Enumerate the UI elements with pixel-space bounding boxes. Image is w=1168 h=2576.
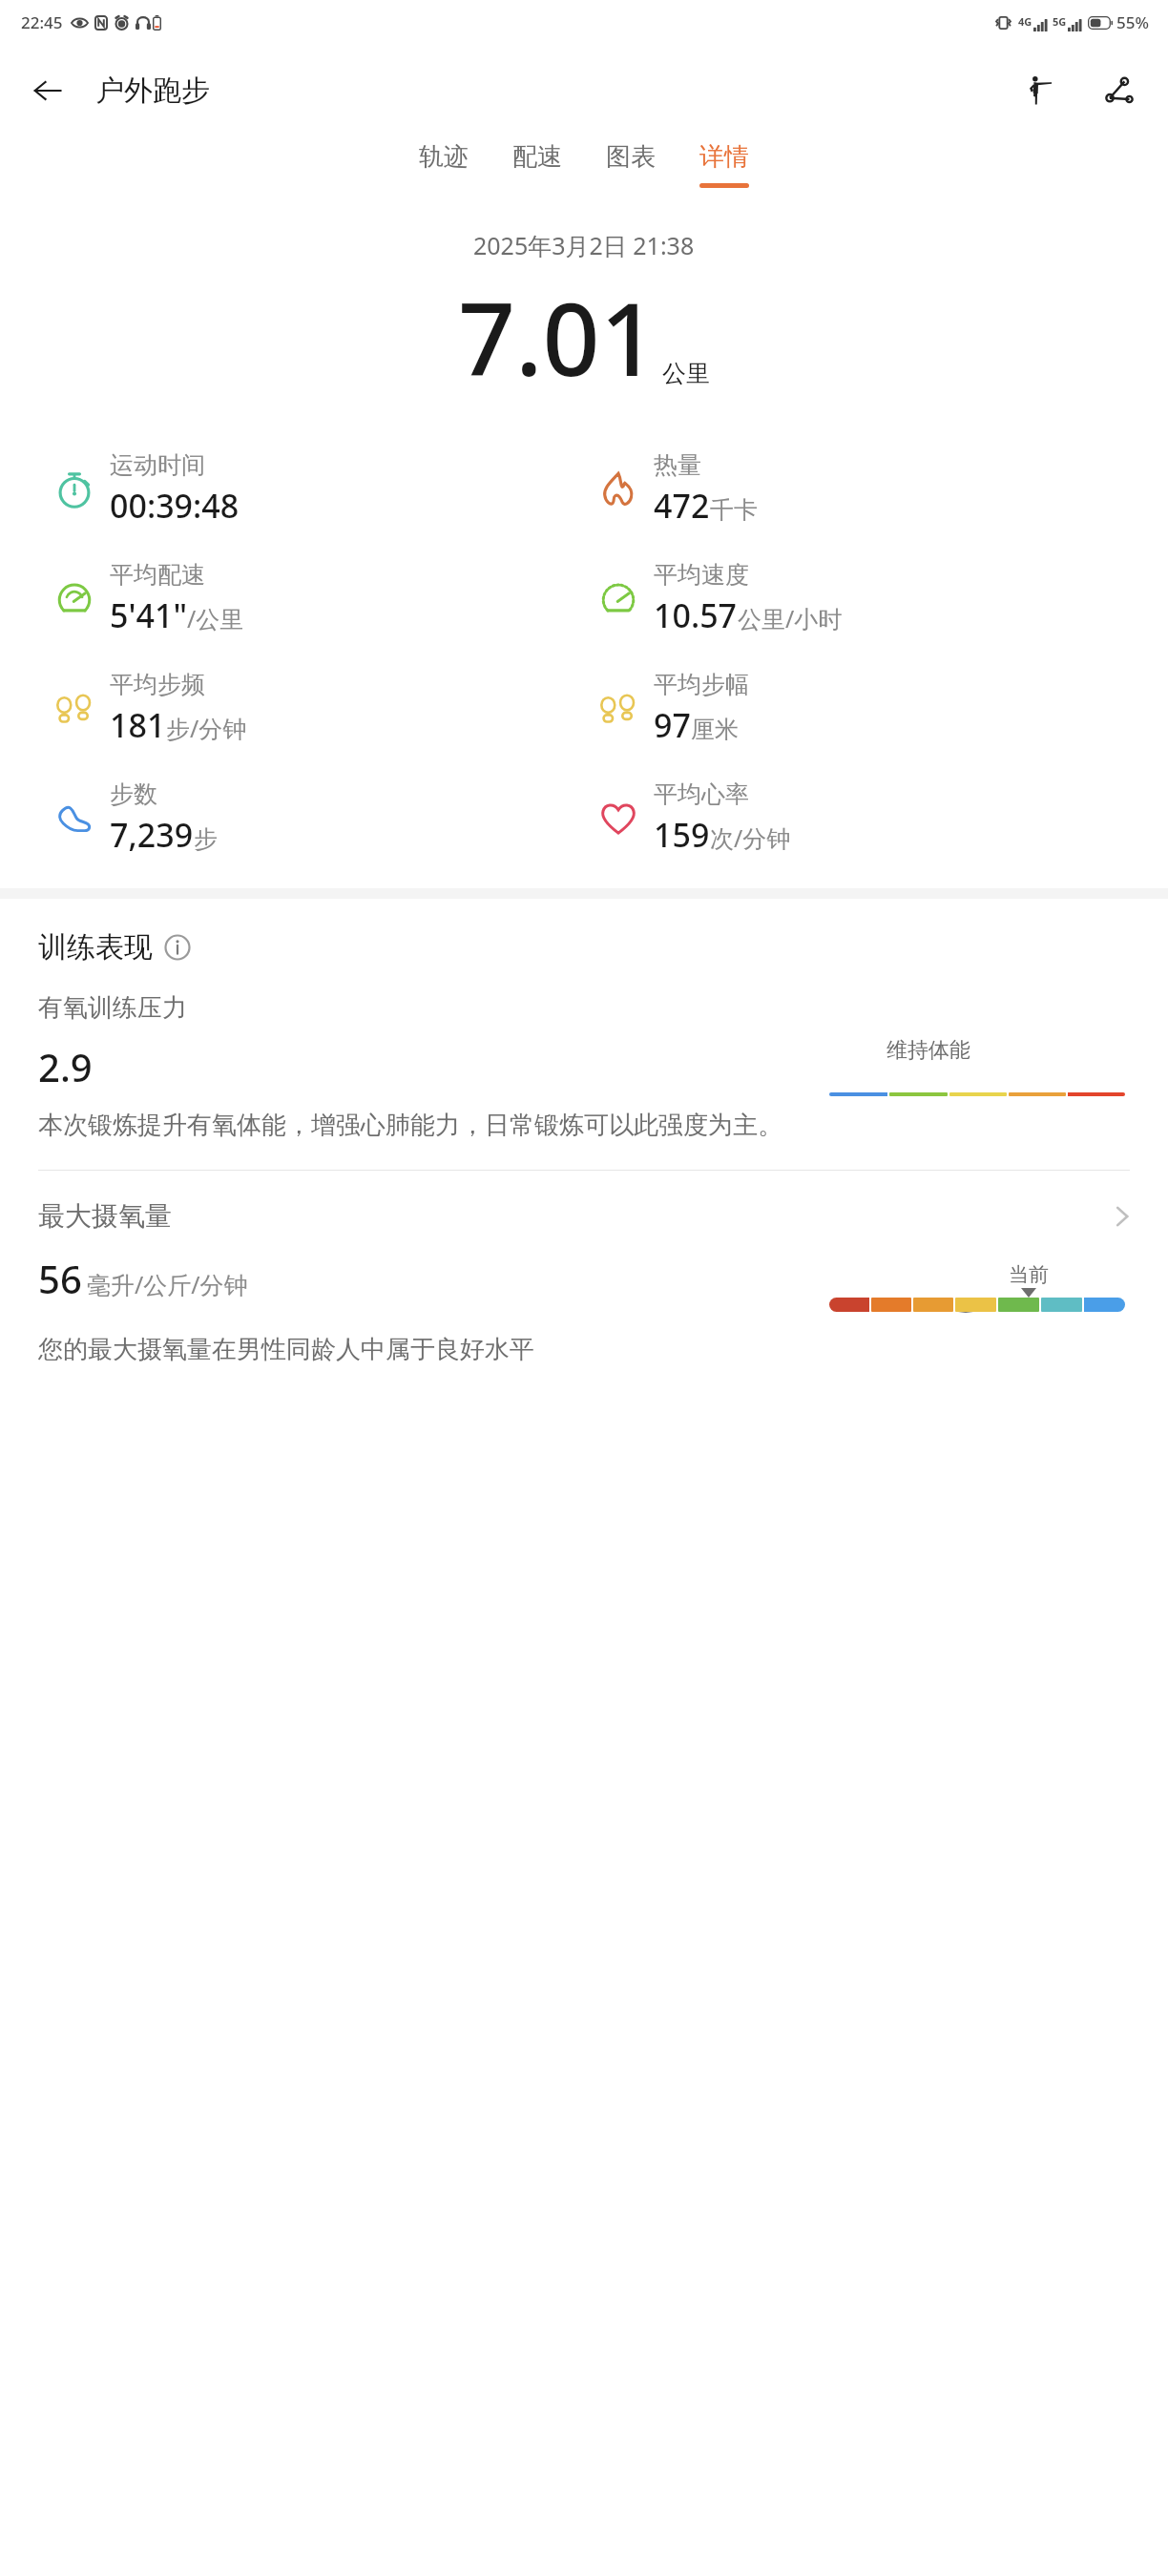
staticText: 4G bbox=[1018, 14, 1032, 29]
button[interactable]: Back bbox=[21, 64, 74, 117]
staticText: 步 bbox=[194, 824, 218, 854]
staticText: 步数 bbox=[110, 779, 157, 809]
button[interactable]: 平均步幅 bbox=[584, 654, 1168, 763]
staticText: 7,239 bbox=[110, 813, 194, 857]
button[interactable]: Share bbox=[1092, 64, 1145, 117]
staticText: 户外跑步 bbox=[95, 73, 210, 109]
staticText: 00:39:48 bbox=[110, 484, 240, 528]
button[interactable]: 平均速度 bbox=[584, 544, 1168, 654]
staticText: 步/分钟 bbox=[166, 712, 247, 744]
staticText: 毫升/公斤/分钟 bbox=[87, 1268, 248, 1300]
staticText: 详情 bbox=[699, 141, 749, 173]
button[interactable]: 平均配速 bbox=[0, 544, 584, 654]
staticText: 平均步幅 bbox=[654, 670, 749, 699]
button[interactable]: Activity type bbox=[1012, 64, 1065, 117]
staticText: 运动时间 bbox=[110, 450, 205, 480]
staticText: 训练表现 bbox=[38, 929, 153, 966]
staticText: 2.9 bbox=[38, 1041, 93, 1092]
button[interactable]: 训练表现 bbox=[0, 924, 1168, 971]
staticText: 维持体能 bbox=[886, 1037, 970, 1064]
staticText: 5G bbox=[1053, 14, 1067, 29]
staticText: 平均步频 bbox=[110, 670, 205, 699]
staticText: 厘米 bbox=[691, 715, 739, 744]
staticText: 平均速度 bbox=[654, 560, 749, 590]
staticText: 10.57 bbox=[654, 593, 738, 637]
staticText: 159 bbox=[654, 813, 710, 857]
staticText: 配速 bbox=[512, 141, 562, 173]
staticText: 55% bbox=[1116, 11, 1149, 33]
button[interactable]: 配速 bbox=[490, 135, 584, 194]
staticText: 平均配速 bbox=[110, 560, 205, 590]
button[interactable]: 热量 bbox=[584, 434, 1168, 544]
button[interactable]: 轨迹 bbox=[397, 135, 490, 194]
staticText: 图表 bbox=[606, 141, 656, 173]
staticText: 平均心率 bbox=[654, 779, 749, 809]
staticText: 当前 bbox=[1009, 1262, 1049, 1287]
staticText: 热量 bbox=[654, 450, 701, 480]
staticText: 有氧训练压力 bbox=[38, 992, 187, 1024]
staticText: 轨迹 bbox=[419, 141, 469, 173]
staticText: 5'41" bbox=[110, 593, 187, 637]
staticText: 97 bbox=[654, 703, 691, 747]
staticText: 公里/小时 bbox=[738, 602, 843, 634]
staticText: 56 bbox=[38, 1253, 82, 1304]
button[interactable]: 详情 bbox=[678, 135, 771, 194]
staticText: 181 bbox=[110, 703, 166, 747]
staticText: /公里 bbox=[187, 602, 244, 634]
button[interactable]: 步数 bbox=[0, 763, 584, 873]
button[interactable]: 平均步频 bbox=[0, 654, 584, 763]
staticText: 2025年3月2日 21:38 bbox=[473, 229, 695, 261]
button[interactable]: 最大摄氧量 bbox=[0, 1199, 1168, 1233]
staticText: 22:45 bbox=[21, 11, 63, 33]
staticText: 千卡 bbox=[710, 495, 758, 525]
staticText: 最大摄氧量 bbox=[38, 1199, 172, 1233]
button[interactable]: 图表 bbox=[584, 135, 678, 194]
staticText: 472 bbox=[654, 484, 710, 528]
staticText: 您的最大摄氧量在男性同龄人中属于良好水平 bbox=[38, 1334, 534, 1365]
button[interactable]: 运动时间 bbox=[0, 434, 584, 544]
staticText: 本次锻炼提升有氧体能，增强心肺能力，日常锻炼可以此强度为主。 bbox=[38, 1110, 782, 1141]
staticText: 次/分钟 bbox=[710, 821, 791, 854]
staticText: 公里 bbox=[662, 359, 710, 388]
staticText: 7.01 bbox=[458, 269, 657, 405]
button[interactable]: 平均心率 bbox=[584, 763, 1168, 873]
